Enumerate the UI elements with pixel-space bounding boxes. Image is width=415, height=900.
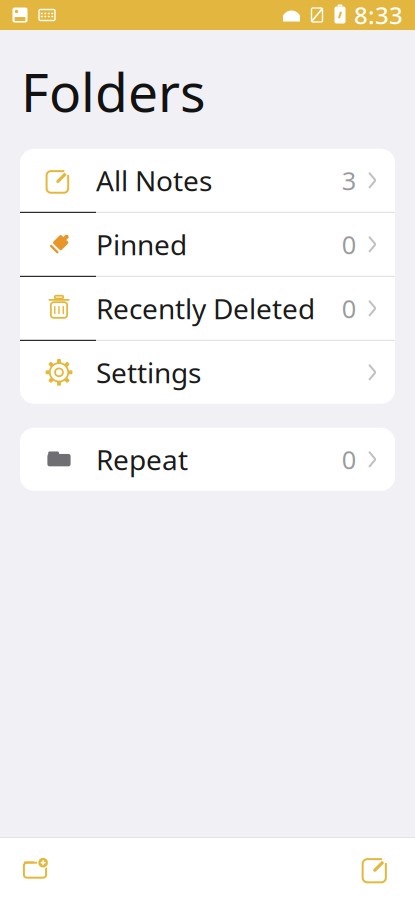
staticText: Settings bbox=[96, 354, 201, 391]
staticText: Pinned bbox=[96, 226, 187, 263]
button[interactable]: New Folder bbox=[8, 842, 62, 896]
staticText: All Notes bbox=[96, 162, 212, 199]
button[interactable]: Pinned bbox=[20, 213, 395, 277]
button[interactable]: Settings bbox=[20, 341, 395, 404]
staticText: Recently Deleted bbox=[96, 290, 315, 327]
staticText: 0 bbox=[342, 442, 356, 476]
staticText: Folders bbox=[21, 56, 206, 127]
staticText: 0 bbox=[342, 291, 356, 325]
button[interactable]: Recently Deleted bbox=[20, 277, 395, 341]
button[interactable]: All Notes bbox=[20, 149, 395, 213]
button[interactable]: New Note bbox=[349, 842, 403, 896]
button[interactable]: Repeat bbox=[20, 428, 395, 491]
staticText: Repeat bbox=[96, 441, 188, 478]
staticText: 3 bbox=[342, 163, 356, 197]
staticText: 8:33 bbox=[354, 0, 403, 31]
staticText: 0 bbox=[342, 227, 356, 261]
